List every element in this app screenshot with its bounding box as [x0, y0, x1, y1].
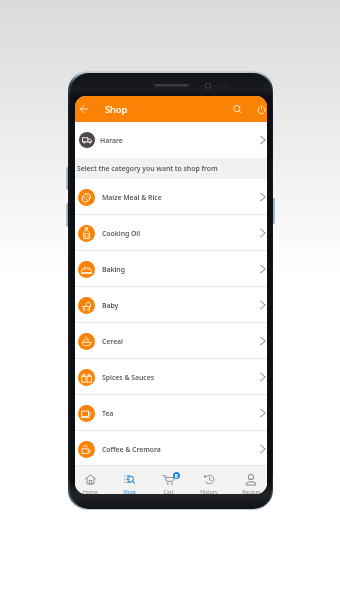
- button[interactable]: Cereal: [75, 323, 267, 359]
- staticText: Harare: [100, 136, 123, 145]
- button[interactable]: Shop: [110, 465, 148, 494]
- button[interactable]: Recipes: [232, 465, 267, 494]
- staticText: History: [200, 488, 218, 494]
- button[interactable]: Cooking Oil: [75, 215, 267, 251]
- staticText: Shop: [105, 103, 128, 116]
- staticText: Tea: [102, 409, 114, 418]
- button[interactable]: Back: [76, 101, 92, 117]
- staticText: Shop: [123, 488, 136, 494]
- staticText: Select the category you want to shop fro…: [77, 164, 218, 173]
- staticText: Baking: [102, 265, 125, 274]
- staticText: Baby: [102, 301, 119, 310]
- staticText: Cart: [163, 488, 174, 494]
- button[interactable]: Baking: [75, 251, 267, 287]
- button[interactable]: History: [190, 465, 228, 494]
- button[interactable]: Maize Meal & Rice: [75, 179, 267, 215]
- button[interactable]: Baby: [75, 287, 267, 323]
- staticText: Home: [83, 488, 98, 494]
- button[interactable]: Home: [75, 465, 109, 494]
- button[interactable]: Power: [256, 104, 267, 115]
- button[interactable]: 0: [149, 465, 187, 494]
- staticText: Coffee & Cremora: [102, 445, 161, 454]
- staticText: Recipes: [242, 488, 261, 494]
- button[interactable]: Tea: [75, 395, 267, 431]
- button[interactable]: Spices & Sauces: [75, 359, 267, 395]
- button[interactable]: Search: [232, 104, 243, 115]
- button[interactable]: Harare: [75, 122, 267, 158]
- staticText: Spices & Sauces: [102, 373, 154, 382]
- button[interactable]: Coffee & Cremora: [75, 431, 267, 467]
- staticText: Cereal: [102, 337, 123, 346]
- staticText: 0: [175, 473, 178, 479]
- staticText: Cooking Oil: [102, 229, 141, 238]
- staticText: Maize Meal & Rice: [102, 193, 162, 202]
